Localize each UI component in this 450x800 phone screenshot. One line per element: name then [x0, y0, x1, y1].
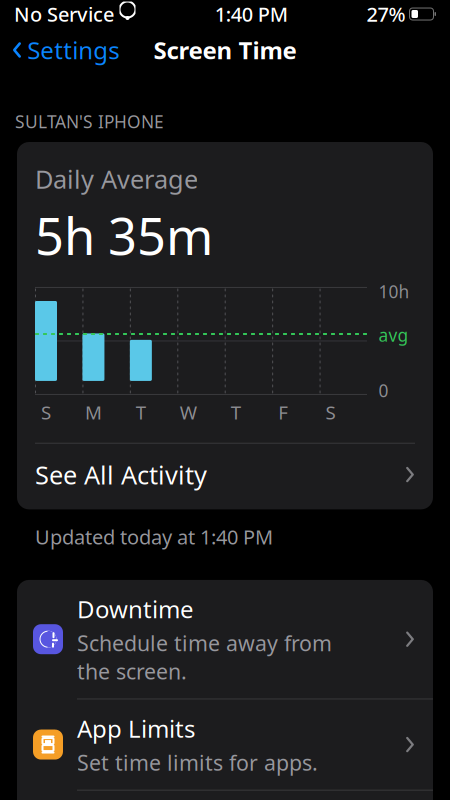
staticText: W — [180, 400, 197, 425]
staticText: See All Activity — [35, 458, 207, 491]
button[interactable]: See All Activity — [35, 444, 415, 505]
staticText: T — [136, 400, 146, 425]
staticText: Settings — [27, 34, 119, 66]
staticText: App Limits — [77, 712, 195, 744]
staticText: 1:40 PM — [215, 1, 288, 27]
staticText: F — [278, 400, 288, 425]
staticText: S — [41, 400, 51, 425]
button[interactable]: Downtime — [17, 580, 433, 699]
staticText: 5h 35m — [35, 202, 213, 269]
staticText: 0 — [378, 379, 388, 402]
button[interactable]: Settings — [0, 28, 131, 72]
staticText: S — [326, 400, 336, 425]
staticText: 27% — [366, 1, 405, 27]
staticText: Set time limits for apps. — [77, 748, 318, 777]
staticText: Schedule time away from the screen. — [77, 629, 332, 685]
staticText: SULTAN'S IPHONE — [15, 110, 164, 133]
staticText: 10h — [378, 280, 409, 303]
staticText: Updated today at 1:40 PM — [35, 523, 273, 550]
staticText: avg — [378, 323, 408, 346]
staticText: Screen Time — [153, 34, 296, 66]
staticText: M — [85, 400, 102, 425]
staticText: Daily Average — [35, 162, 198, 196]
staticText: T — [231, 400, 241, 425]
staticText: No Service — [14, 1, 114, 27]
staticText: Downtime — [77, 593, 194, 625]
button[interactable]: App Limits — [17, 699, 433, 791]
